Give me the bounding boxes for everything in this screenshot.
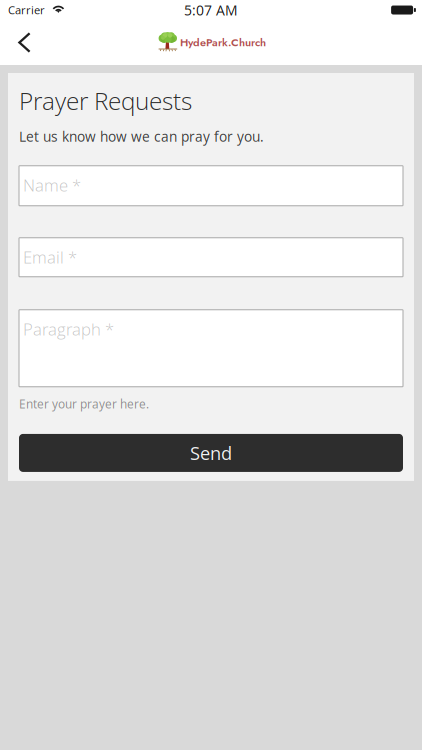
staticText: Name * [23,174,81,196]
staticText: HydePark.Church [180,35,266,50]
staticText: Paragraph * [23,318,114,340]
staticText: Email * [23,246,77,268]
staticText: Let us know how we can pray for you. [19,127,264,146]
staticText: 5:07 AM [184,0,238,20]
staticText: Enter your prayer here. [19,396,149,412]
staticText: Carrier [8,2,45,18]
button[interactable]: Send [19,434,403,472]
staticText: Send [190,440,232,465]
staticText: Prayer Requests [19,84,192,117]
button[interactable]: Paragraph * [19,310,403,387]
button[interactable]: Name * [19,166,403,206]
button[interactable]: Back [0,21,47,63]
button[interactable]: Email * [19,238,403,277]
